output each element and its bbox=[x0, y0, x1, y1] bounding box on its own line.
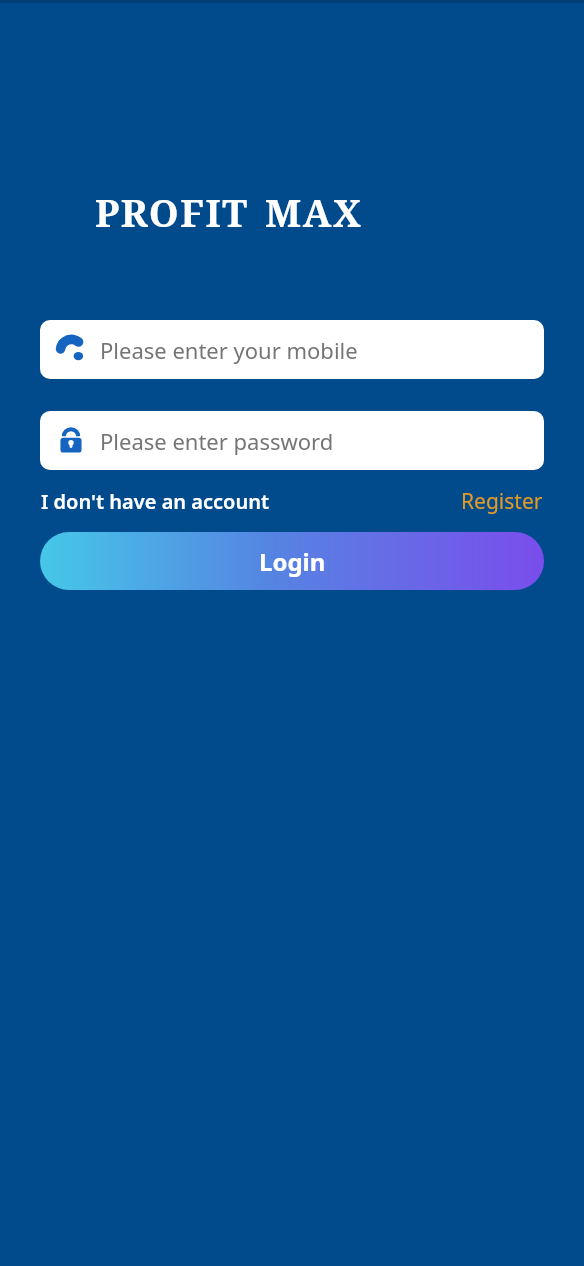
button[interactable]: Password bbox=[40, 411, 544, 470]
staticText: I don't have an account bbox=[41, 488, 270, 515]
staticText: PROFIT bbox=[95, 186, 249, 238]
staticText: MAX bbox=[265, 186, 363, 238]
other: Mobile number bbox=[55, 334, 87, 366]
button[interactable]: I don't have an account bbox=[41, 488, 270, 515]
button[interactable]: Register bbox=[461, 487, 543, 516]
other: Password bbox=[55, 425, 87, 457]
staticText: Please enter password bbox=[100, 426, 334, 456]
staticText: Register bbox=[461, 487, 543, 516]
button[interactable]: Mobile number bbox=[40, 320, 544, 379]
staticText: Login bbox=[259, 545, 326, 578]
button[interactable]: Login bbox=[40, 532, 544, 590]
staticText: Please enter your mobile bbox=[100, 335, 358, 365]
